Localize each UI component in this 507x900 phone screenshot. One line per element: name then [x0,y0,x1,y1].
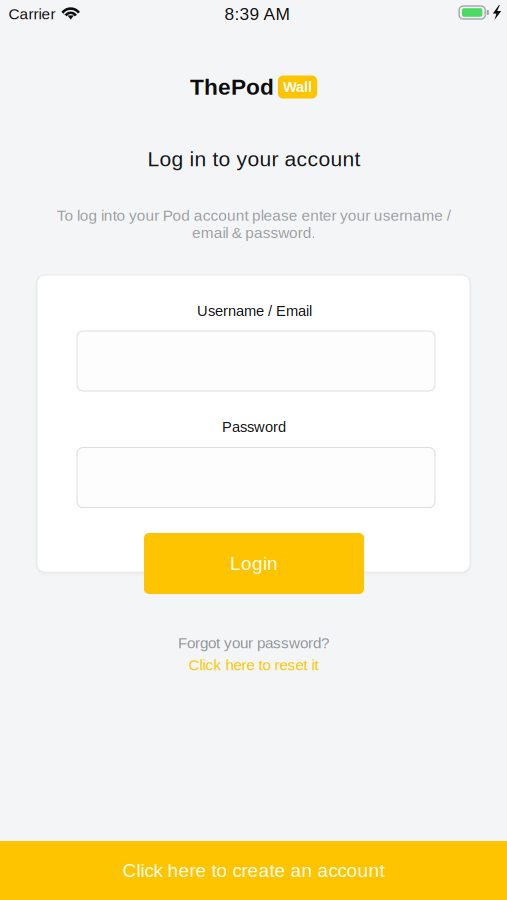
staticText: Forgot your password? [178,634,329,651]
button[interactable]: Login [144,533,364,594]
staticText: Wall [283,79,312,95]
staticText: ThePod [190,74,274,100]
staticText: 8:39 AM [224,4,289,24]
staticText: Password [222,419,286,435]
button[interactable]: Click here to create an account [0,841,507,900]
button[interactable]: Password [77,447,435,507]
staticText: Click here to create an account [122,860,384,881]
button[interactable]: Forgot your password? [153,631,353,677]
button[interactable]: Username / Email [77,331,435,391]
staticText: Carrier [8,5,55,22]
staticText: Username / Email [197,303,312,319]
staticText: Log in to your account [147,147,360,171]
staticText: Login [230,553,278,574]
staticText: Click here to reset it [188,656,318,673]
staticText: To log into your Pod account please ente… [56,207,451,241]
